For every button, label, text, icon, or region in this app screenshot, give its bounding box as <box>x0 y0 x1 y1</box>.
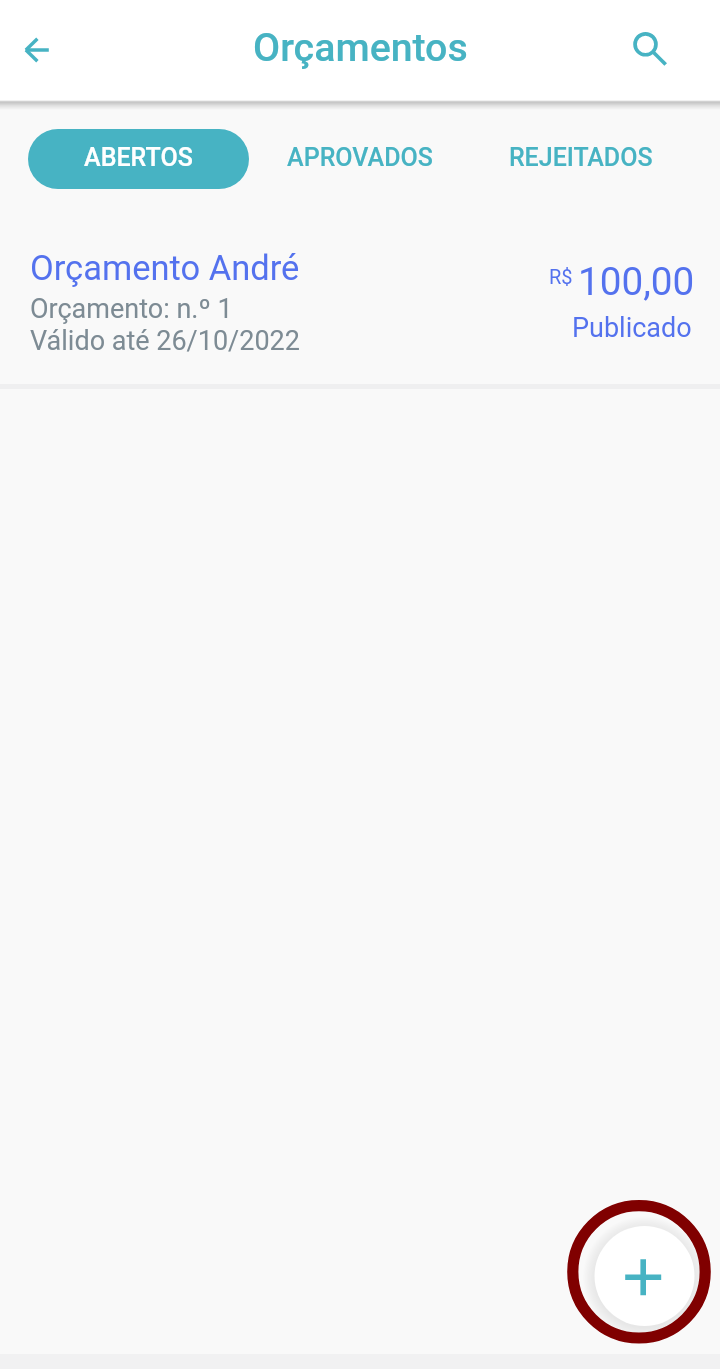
staticText: ABERTOS <box>84 143 193 172</box>
staticText: Orçamento André <box>30 248 300 288</box>
staticText: REJEITADOS <box>509 143 653 172</box>
button[interactable]: Back <box>1 13 72 84</box>
button[interactable]: Search <box>614 13 684 83</box>
button[interactable]: Orçamento André <box>0 232 720 389</box>
staticText: R$ <box>549 265 573 288</box>
staticText: Orçamento: n.º 1 <box>30 293 233 325</box>
staticText: Válido até 26/10/2022 <box>30 325 300 357</box>
staticText: Publicado <box>572 312 692 344</box>
button[interactable]: ABERTOS <box>28 129 249 189</box>
button[interactable]: Add <box>560 1192 720 1352</box>
staticText: Orçamentos <box>253 25 468 71</box>
button[interactable]: REJEITADOS <box>494 127 667 187</box>
staticText: 100,00 <box>578 259 695 304</box>
staticText: APROVADOS <box>287 143 433 172</box>
button[interactable]: APROVADOS <box>272 127 448 187</box>
